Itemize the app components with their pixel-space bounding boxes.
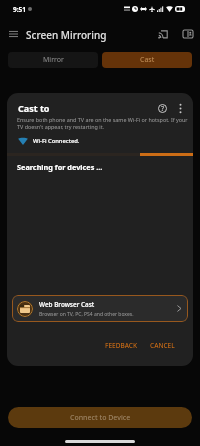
staticText: Cast (140, 55, 155, 65)
button[interactable]: Guide (178, 24, 198, 44)
staticText: Web Browser Cast (39, 300, 95, 309)
button[interactable]: FEEDBACK (101, 337, 142, 354)
staticText: Mirror (43, 55, 64, 65)
staticText: CANCEL (150, 341, 175, 350)
button[interactable]: Connect to Device (8, 407, 192, 428)
staticText: Ensure both phone and TV are on the same… (17, 116, 192, 131)
button[interactable]: Cast (153, 24, 173, 44)
button[interactable]: More options (171, 99, 190, 118)
staticText: Screen Mirroring (26, 28, 107, 42)
button[interactable]: Menu (3, 24, 23, 44)
button[interactable]: Cast (102, 52, 192, 68)
button[interactable]: Web Browser Cast (12, 295, 188, 322)
staticText: 9:51 (13, 5, 26, 14)
staticText: Connect to Device (70, 413, 131, 423)
staticText: Wi-Fi Connected. (33, 137, 80, 145)
staticText: Browser on TV, PC, PS4 and other boxes. (39, 311, 134, 318)
button[interactable]: Mirror (8, 52, 98, 68)
staticText: Cast to (18, 102, 50, 114)
staticText: ? (161, 104, 165, 113)
button[interactable]: CANCEL (146, 337, 179, 354)
button[interactable]: Help (153, 99, 172, 118)
staticText: FEEDBACK (105, 341, 138, 350)
staticText: Searching for devices ... (17, 162, 103, 172)
